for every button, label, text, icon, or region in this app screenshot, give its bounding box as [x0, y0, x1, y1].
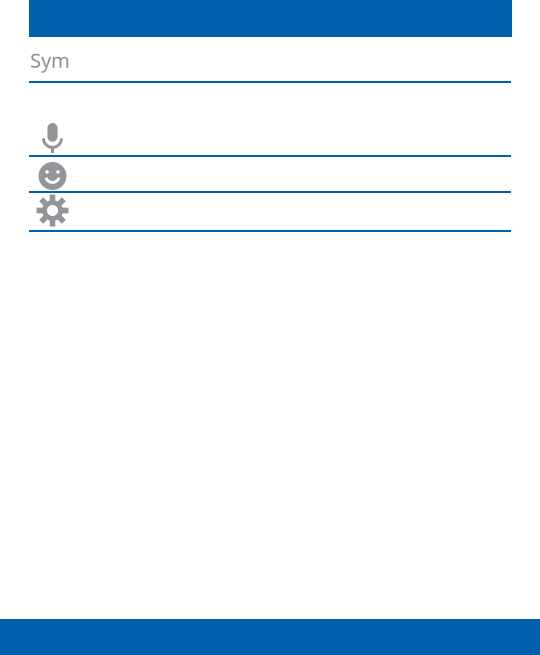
button[interactable]: Emoji — [0, 157, 540, 191]
button[interactable]: Settings — [0, 193, 540, 230]
button[interactable]: Voice input — [0, 83, 540, 155]
staticText: Sym — [30, 47, 70, 73]
